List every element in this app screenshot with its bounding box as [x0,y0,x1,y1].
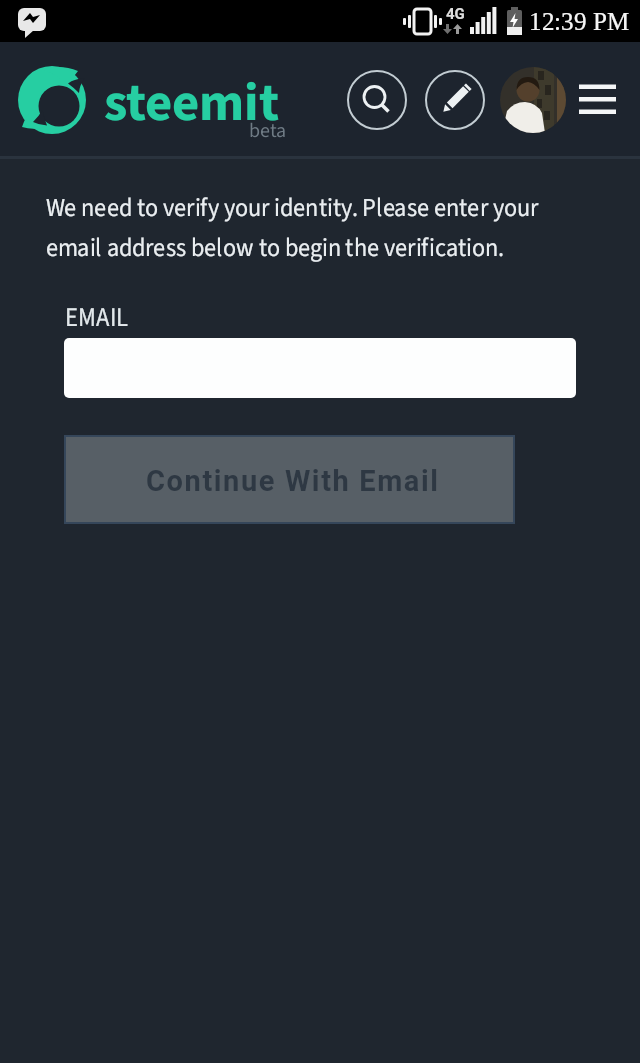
button[interactable] [64,338,576,398]
button[interactable] [17,66,87,136]
button[interactable]: Continue With Email [64,435,515,524]
staticText: Continue With Email [146,464,440,498]
button[interactable] [500,67,566,133]
button[interactable] [347,70,407,130]
button[interactable] [575,80,620,120]
staticText: 4G [446,5,465,23]
button[interactable] [425,70,485,130]
